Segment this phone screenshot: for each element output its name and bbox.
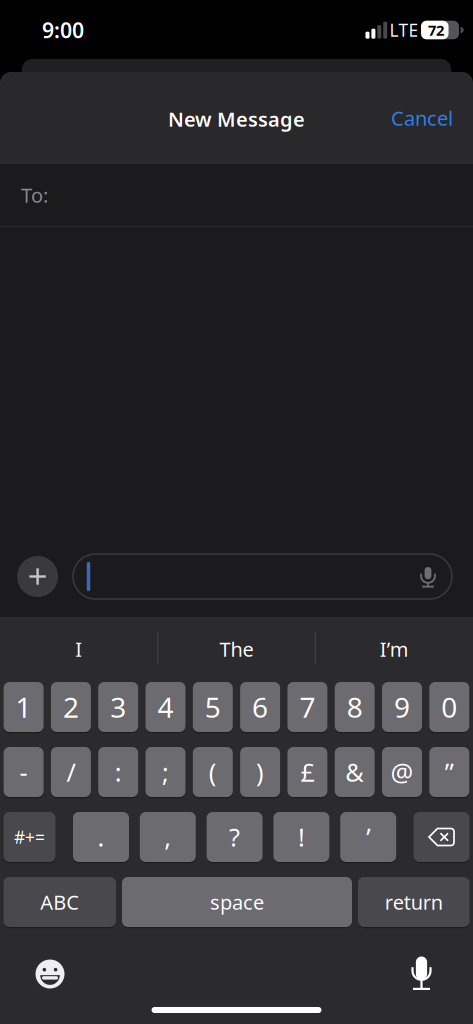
button[interactable]: return [358,876,469,928]
button[interactable]: & [335,746,375,798]
button[interactable]: ) [240,746,280,798]
staticText: 8 [347,688,363,726]
button[interactable]: / [51,746,91,798]
staticText: ) [256,755,264,789]
staticText: 1 [16,688,32,726]
staticText: , [164,820,171,854]
staticText: New Message [168,106,305,132]
button[interactable]: 0 [429,681,469,733]
staticText: #+= [14,825,45,848]
staticText: return [385,889,443,915]
staticText: : [115,755,122,789]
button[interactable]: ABC [3,876,116,928]
button[interactable]: , [140,811,196,863]
staticText: 7 [299,688,315,726]
staticText: @ [390,755,413,789]
staticText: 72 [428,20,444,40]
staticText: ( [209,755,217,789]
button[interactable]: 6 [240,681,280,733]
button[interactable]: Cancel [391,105,453,131]
button[interactable]: 5 [193,681,233,733]
button[interactable]: @ [382,746,422,798]
button[interactable]: 9 [382,681,422,733]
button[interactable]: . [73,811,129,863]
staticText: Cancel [391,105,453,131]
button[interactable]: space [122,876,352,928]
staticText: I [75,636,82,662]
button[interactable]: I [4,621,154,677]
staticText: - [20,755,28,789]
button[interactable]: 1 [4,681,44,733]
button[interactable]: 3 [98,681,138,733]
staticText: . [97,820,104,854]
button[interactable]: Delete [413,811,469,863]
staticText: ’ [366,820,370,854]
staticText: 6 [252,688,268,726]
staticText: 4 [157,688,173,726]
button[interactable]: 4 [145,681,185,733]
button[interactable]: Dictate [418,566,438,587]
button[interactable]: To: [0,164,473,226]
button[interactable]: ( [193,746,233,798]
button[interactable]: 7 [287,681,327,733]
button[interactable]: Add attachment [17,556,58,597]
staticText: ABC [40,889,79,915]
staticText: 9:00 [42,16,84,44]
button[interactable]: £ [287,746,327,798]
staticText: space [210,889,264,915]
button[interactable]: The [161,621,311,677]
button[interactable]: ! [273,811,329,863]
button[interactable]: : [98,746,138,798]
button[interactable]: I’m [319,621,469,677]
button[interactable]: ” [429,746,469,798]
staticText: 5 [205,688,221,726]
button[interactable]: - [4,746,44,798]
button[interactable]: 2 [51,681,91,733]
staticText: ; [162,755,169,789]
staticText: 9 [394,688,410,726]
button[interactable]: ; [145,746,185,798]
button[interactable]: #+= [3,811,55,863]
button[interactable]: Emoji [35,959,65,989]
staticText: 0 [441,688,457,726]
staticText: ” [445,755,454,789]
button[interactable]: Dictate [409,956,433,990]
button[interactable]: ’ [340,811,396,863]
staticText: I’m [380,636,409,662]
staticText: To: [21,182,48,208]
button[interactable]: ? [207,811,263,863]
button[interactable]: Message field [73,554,452,599]
staticText: ? [229,820,240,854]
staticText: ! [298,820,305,854]
staticText: 3 [110,688,126,726]
staticText: / [66,755,75,789]
button[interactable]: 8 [335,681,375,733]
staticText: £ [300,755,314,789]
staticText: The [219,636,253,662]
staticText: 2 [63,688,79,726]
staticText: & [345,755,364,789]
staticText: LTE [389,18,418,41]
